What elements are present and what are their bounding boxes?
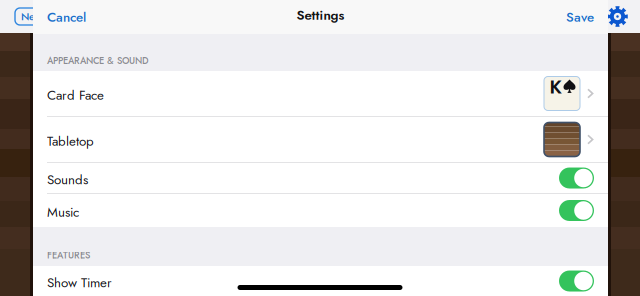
button[interactable]: Sounds — [33, 163, 608, 194]
staticText: Sounds — [47, 170, 88, 189]
button[interactable]: New — [15, 8, 49, 25]
staticText: Card Face — [47, 85, 104, 105]
staticText: Save — [566, 7, 594, 27]
button[interactable]: Tabletop — [33, 117, 608, 163]
button[interactable]: Music — [33, 194, 608, 227]
staticText: Music — [47, 202, 79, 222]
staticText: K — [549, 73, 561, 100]
button[interactable]: Save — [554, 0, 608, 35]
staticText: Tabletop — [47, 131, 94, 151]
staticText: New — [21, 9, 43, 24]
button[interactable]: Cancel — [33, 0, 98, 35]
staticText: Settings — [296, 5, 344, 25]
staticText: Show Timer — [47, 273, 112, 292]
button[interactable]: Settings — [607, 6, 628, 27]
button[interactable]: Card Face — [33, 71, 608, 117]
staticText: APPEARANCE & SOUND — [47, 54, 149, 67]
staticText: Cancel — [47, 7, 86, 27]
staticText: FEATURES — [47, 248, 90, 262]
button[interactable]: Show Timer — [33, 266, 608, 296]
